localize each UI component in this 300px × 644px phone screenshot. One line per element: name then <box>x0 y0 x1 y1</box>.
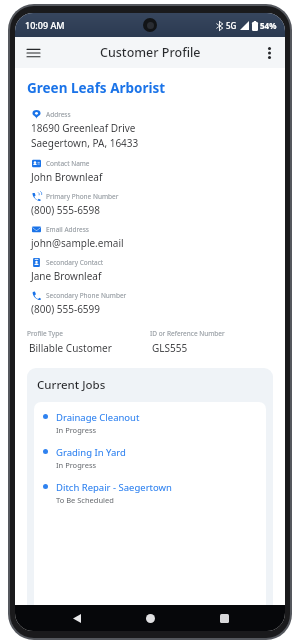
button[interactable]: Grading In Yard <box>34 445 266 471</box>
button[interactable]: Recent apps <box>212 606 236 630</box>
staticText: Secondary Contact <box>46 258 104 267</box>
staticText: To Be Scheduled <box>56 495 114 505</box>
staticText: Email Address <box>46 225 89 234</box>
button[interactable]: More options <box>256 40 282 66</box>
staticText: john@sample.email <box>31 236 124 250</box>
staticText: ID or Reference Number <box>150 329 225 338</box>
staticText: Ditch Repair - Saegertown <box>56 481 172 494</box>
button[interactable]: Menu <box>20 40 46 66</box>
staticText: Jane Brownleaf <box>31 269 102 283</box>
staticText: 5G <box>226 20 237 31</box>
staticText: 18690 Greenleaf Drive <box>31 121 136 135</box>
staticText: 10:09 AM <box>25 19 65 31</box>
staticText: In Progress <box>56 460 97 470</box>
staticText: Primary Phone Number <box>46 192 119 201</box>
staticText: GLS555 <box>152 341 188 355</box>
staticText: Secondary Phone Number <box>46 291 127 300</box>
staticText: 54% <box>260 20 277 31</box>
staticText: John Brownleaf <box>31 170 103 184</box>
staticText: Green Leafs Arborist <box>27 79 166 97</box>
staticText: Saegertown, PA, 16433 <box>31 136 139 150</box>
staticText: Address <box>46 110 71 119</box>
staticText: Profile Type <box>27 329 63 338</box>
staticText: In Progress <box>56 425 97 435</box>
staticText: (800) 555-6599 <box>31 302 101 316</box>
staticText: (800) 555-6598 <box>31 203 101 217</box>
staticText: Grading In Yard <box>56 446 126 459</box>
staticText: Billable Customer <box>29 341 112 355</box>
button[interactable]: Home <box>138 606 162 630</box>
button[interactable]: Back <box>65 606 89 630</box>
staticText: Contact Name <box>46 159 90 168</box>
staticText: Customer Profile <box>100 44 201 61</box>
staticText: Drainage Cleanout <box>56 411 140 424</box>
staticText: Current Jobs <box>37 377 106 393</box>
button[interactable]: Drainage Cleanout <box>34 410 266 436</box>
button[interactable]: Ditch Repair - Saegertown <box>34 480 266 506</box>
